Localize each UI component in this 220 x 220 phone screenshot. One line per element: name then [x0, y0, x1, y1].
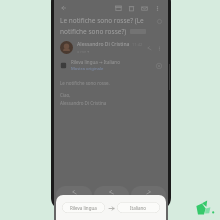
- button[interactable]: Delete: [125, 2, 138, 15]
- staticText: Le notifiche sono rosse.: [60, 80, 110, 86]
- button[interactable]: Back: [58, 2, 70, 14]
- button[interactable]: Mark as unread: [138, 2, 151, 15]
- button[interactable]: More options: [151, 2, 164, 15]
- staticText: Italiano: [130, 205, 147, 211]
- staticText: a me ▾: [77, 49, 90, 54]
- staticText: Le notifiche sono rosse? (Le: [60, 16, 144, 25]
- staticText: notifiche sono rosse?): [60, 27, 127, 36]
- staticText: Rileva lingua → Italiano: [71, 59, 120, 65]
- staticText: Alessandro Di Cristina: [77, 41, 130, 48]
- staticText: Alessandro Di Cristina: [60, 100, 107, 106]
- button[interactable]: Reply all: [94, 186, 129, 204]
- button[interactable]: Reply: [56, 186, 92, 204]
- button[interactable]: Italiano: [117, 202, 160, 213]
- staticText: 11:42: [132, 42, 143, 47]
- staticText: Ciao,: [60, 92, 71, 98]
- button[interactable]: Rileva lingua: [62, 202, 105, 213]
- button[interactable]: Archive: [112, 2, 125, 15]
- staticText: Mostra originale: [71, 66, 104, 72]
- staticText: Rileva lingua: [70, 205, 97, 211]
- button[interactable]: Close translation bar: [154, 61, 164, 71]
- button[interactable]: Forward: [131, 186, 166, 204]
- button[interactable]: Star: [154, 16, 164, 26]
- button[interactable]: Sender avatar: [60, 41, 73, 54]
